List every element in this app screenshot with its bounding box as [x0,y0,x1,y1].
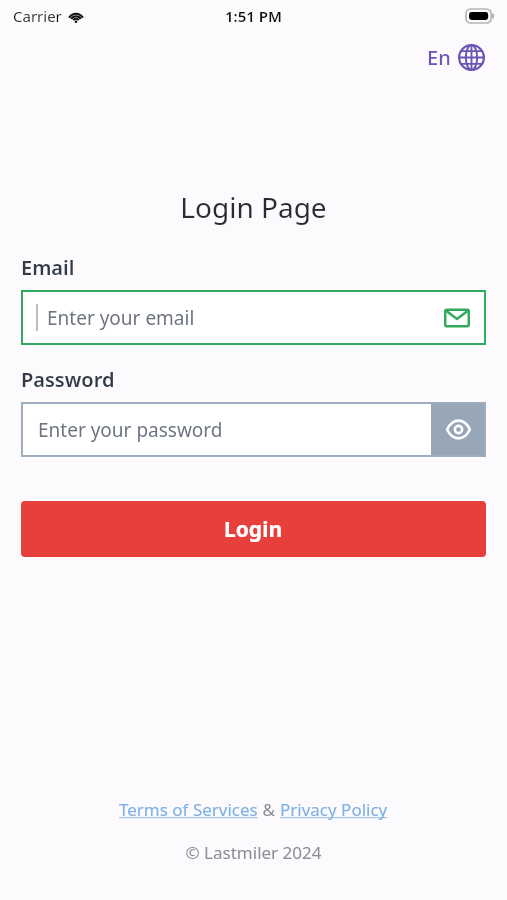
staticText: & [258,798,280,821]
staticText: Password [21,366,115,393]
button[interactable]: Show password [431,402,486,457]
staticText: Email [21,254,75,281]
staticText: En [427,44,451,71]
staticText: Enter your password [38,417,223,443]
button[interactable]: Login [21,501,486,557]
staticText: Login [224,515,283,544]
staticText: © Lastmiler 2024 [0,841,507,864]
button[interactable]: Change language [423,40,489,75]
button[interactable]: Enter your email [21,290,486,345]
staticText: Enter your email [47,305,444,331]
staticText: Carrier [13,6,62,26]
button[interactable]: Terms of Services [119,798,258,821]
button[interactable]: Enter your password [21,402,431,457]
button[interactable]: Privacy Policy [280,798,388,821]
staticText: 1:51 PM [225,6,282,26]
other: Email [444,305,470,331]
staticText: Login Page [0,188,507,226]
